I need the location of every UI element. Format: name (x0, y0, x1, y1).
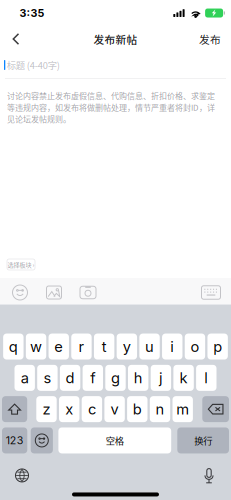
button[interactable]: Delete (202, 396, 229, 422)
staticText: 见论坛发帖规则。 (7, 113, 71, 125)
staticText: m (176, 400, 189, 418)
button[interactable]: g (105, 365, 126, 391)
button[interactable]: q (3, 334, 23, 360)
staticText: n (155, 400, 164, 418)
button[interactable]: o (185, 334, 205, 360)
button[interactable]: 空格 (58, 427, 171, 453)
button[interactable]: i (162, 334, 182, 360)
staticText: k (180, 369, 188, 387)
staticText: 发布新帖 (93, 31, 137, 47)
staticText: 等违规内容，如发布将做删帖处理，情节严重者将封ID，详 (7, 101, 215, 113)
button[interactable]: y (117, 334, 137, 360)
button[interactable]: j (151, 365, 171, 391)
staticText: d (66, 369, 75, 387)
button[interactable]: t (94, 334, 114, 360)
staticText: 换行 (194, 434, 212, 447)
button[interactable]: s (37, 365, 58, 391)
button[interactable]: u (139, 334, 160, 360)
staticText: 选择板块 › (7, 260, 34, 269)
staticText: e (54, 338, 63, 355)
staticText: a (21, 369, 29, 387)
button[interactable]: f (83, 365, 103, 391)
button[interactable]: Emoji (31, 427, 53, 453)
staticText: 标题 (4-40字) (7, 58, 60, 72)
button[interactable]: b (127, 396, 147, 422)
button[interactable]: w (26, 334, 46, 360)
button[interactable]: 选择板块 › (7, 259, 35, 270)
button[interactable]: a (14, 365, 35, 391)
staticText: s (43, 369, 51, 387)
staticText: v (111, 400, 119, 418)
staticText: 123 (6, 434, 24, 447)
staticText: o (190, 338, 199, 355)
button[interactable]: k (173, 365, 194, 391)
staticText: x (65, 400, 73, 418)
staticText: i (170, 338, 174, 355)
staticText: 讨论内容禁止发布虚假信息、代购信息、折扣价格、求鉴定 (7, 90, 215, 101)
staticText: 发布 (199, 31, 221, 47)
staticText: u (145, 338, 154, 355)
staticText: h (134, 369, 143, 387)
staticText: c (88, 400, 96, 418)
button[interactable]: m (172, 396, 193, 422)
staticText: t (102, 338, 107, 355)
button[interactable]: Photo (37, 278, 71, 307)
button[interactable]: Dictation (195, 466, 223, 484)
button[interactable]: d (60, 365, 80, 391)
staticText: 空格 (106, 434, 124, 447)
staticText: 3:35 (19, 6, 44, 19)
staticText: f (90, 369, 95, 387)
button[interactable]: v (104, 396, 125, 422)
button[interactable]: Next Keyboard (8, 466, 36, 484)
button[interactable]: n (150, 396, 170, 422)
button[interactable]: Back (0, 26, 32, 52)
staticText: b (133, 400, 142, 418)
staticText: l (204, 369, 208, 387)
button[interactable]: Emoji (3, 278, 37, 307)
staticText: y (123, 338, 131, 355)
staticText: w (30, 338, 42, 355)
staticText: j (159, 369, 163, 387)
button[interactable]: c (82, 396, 102, 422)
button[interactable]: Hide Keyboard (194, 278, 228, 307)
button[interactable]: z (36, 396, 57, 422)
button[interactable]: 换行 (177, 427, 229, 453)
button[interactable]: r (71, 334, 92, 360)
staticText: p (213, 338, 222, 355)
button[interactable]: e (48, 334, 69, 360)
button[interactable]: x (59, 396, 79, 422)
staticText: z (42, 400, 50, 418)
button[interactable]: 发布 (189, 26, 231, 52)
button[interactable]: h (128, 365, 148, 391)
staticText: q (9, 338, 18, 355)
button[interactable]: 123 (2, 427, 27, 453)
button[interactable]: p (207, 334, 228, 360)
button[interactable]: Camera (71, 278, 105, 307)
staticText: r (78, 338, 84, 355)
staticText: g (111, 369, 120, 387)
button[interactable]: l (196, 365, 216, 391)
button[interactable]: Shift (2, 396, 27, 422)
